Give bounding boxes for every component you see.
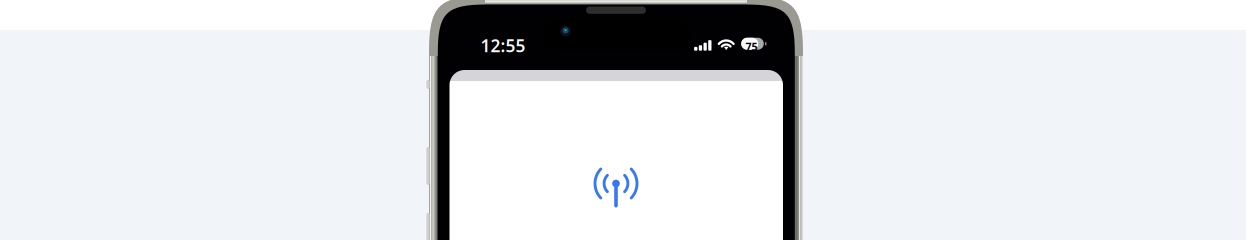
staticText: 75: [746, 40, 758, 54]
staticText: 12:55: [480, 34, 525, 57]
